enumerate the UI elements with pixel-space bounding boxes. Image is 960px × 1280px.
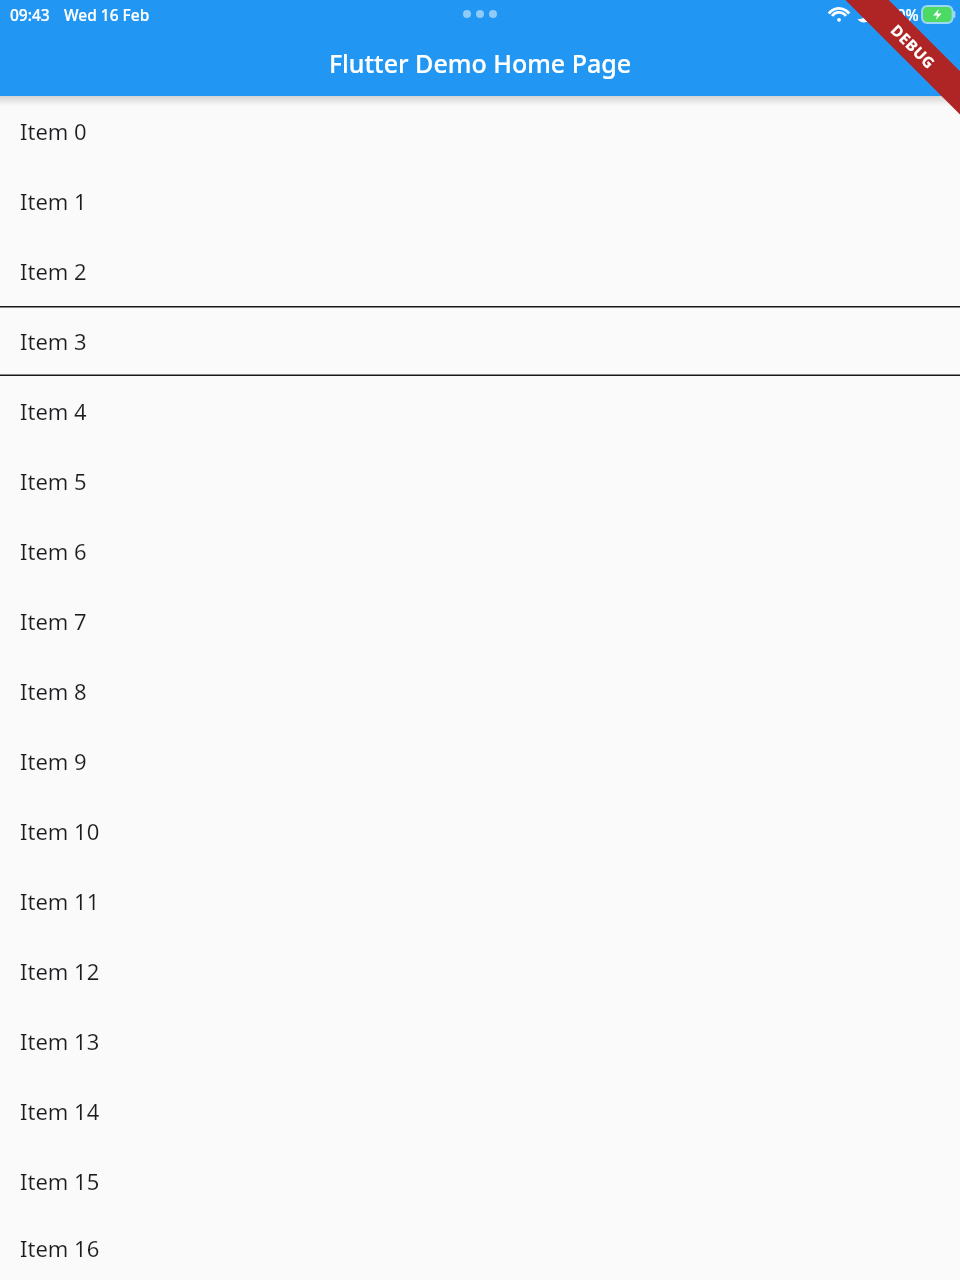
staticText: Item 16	[20, 1233, 100, 1263]
button[interactable]: Item 9	[0, 726, 960, 796]
staticText: Item 3	[20, 326, 87, 356]
staticText: Item 2	[20, 256, 87, 286]
button[interactable]: Item 3	[0, 306, 960, 376]
button[interactable]: Item 12	[0, 936, 960, 1006]
button[interactable]: Item 11	[0, 866, 960, 936]
button[interactable]: Item 0	[0, 96, 960, 166]
staticText: Flutter Demo Home Page	[0, 46, 960, 80]
staticText: Item 10	[20, 816, 100, 846]
button[interactable]: Item 15	[0, 1146, 960, 1216]
staticText: Item 12	[20, 956, 100, 986]
staticText: Item 4	[20, 396, 87, 426]
staticText: Item 11	[20, 886, 100, 916]
staticText: Item 8	[20, 676, 87, 706]
staticText: 100%	[879, 4, 919, 25]
button[interactable]: Item 13	[0, 1006, 960, 1076]
staticText: Item 6	[20, 536, 87, 566]
button[interactable]: Item 4	[0, 376, 960, 446]
button[interactable]: Item 2	[0, 236, 960, 306]
button[interactable]: Item 16	[0, 1216, 960, 1280]
button[interactable]: Item 5	[0, 446, 960, 516]
button[interactable]: Item 1	[0, 166, 960, 236]
staticText: Item 15	[20, 1166, 100, 1196]
button[interactable]: Item 7	[0, 586, 960, 656]
staticText: Item 14	[20, 1096, 100, 1126]
button[interactable]: Item 14	[0, 1076, 960, 1146]
staticText: Item 13	[20, 1026, 100, 1056]
staticText: Item 0	[20, 116, 87, 146]
staticText: Item 9	[20, 746, 87, 776]
button[interactable]: Item 6	[0, 516, 960, 586]
button[interactable]: Item 8	[0, 656, 960, 726]
staticText: Wed 16 Feb	[64, 4, 150, 25]
staticText: Item 7	[20, 606, 87, 636]
staticText: Item 1	[20, 186, 87, 216]
staticText: Item 5	[20, 466, 87, 496]
staticText: 09:43	[10, 4, 50, 25]
button[interactable]: Item 10	[0, 796, 960, 866]
